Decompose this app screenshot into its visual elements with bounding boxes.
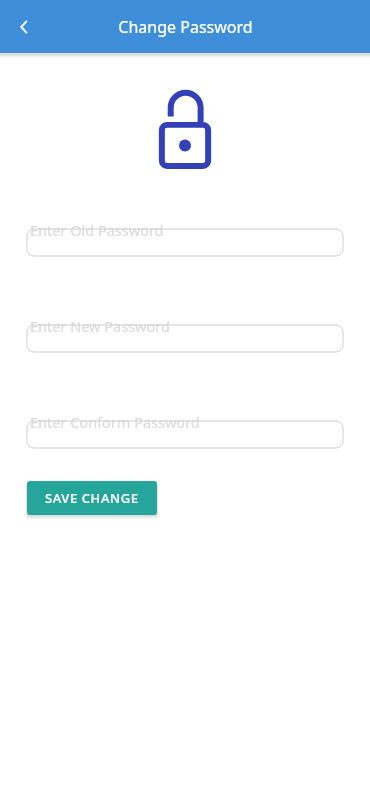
button[interactable]: Back <box>4 7 44 47</box>
button[interactable]: SAVE CHANGE <box>27 481 157 515</box>
button[interactable]: Enter Conform Password <box>27 411 343 449</box>
button[interactable]: Enter Old Password <box>27 219 343 257</box>
staticText: Enter Old Password <box>30 220 164 240</box>
staticText: SAVE CHANGE <box>45 489 139 507</box>
staticText: Change Password <box>118 16 253 38</box>
button[interactable]: Enter New Password <box>27 315 343 353</box>
staticText: Enter Conform Password <box>30 412 200 432</box>
staticText: Enter New Password <box>30 316 170 336</box>
